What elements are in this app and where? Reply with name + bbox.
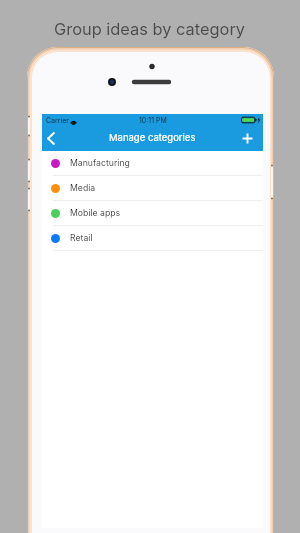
staticText: Retail <box>70 233 93 244</box>
button[interactable]: Media <box>42 176 263 201</box>
staticText: 10:11 PM <box>139 116 167 124</box>
staticText: Media <box>70 183 96 194</box>
button[interactable]: Mobile apps <box>42 201 263 226</box>
button[interactable]: Retail <box>42 226 263 251</box>
staticText: Carrier <box>46 116 69 124</box>
staticText: Manufacturing <box>70 158 130 169</box>
staticText: Group ideas by category <box>54 19 246 39</box>
button[interactable]: Back <box>42 127 59 151</box>
staticText: Manage categories <box>109 132 196 143</box>
staticText: Mobile apps <box>70 208 121 219</box>
button[interactable]: Manufacturing <box>42 151 263 176</box>
button[interactable]: Add category <box>243 127 263 151</box>
